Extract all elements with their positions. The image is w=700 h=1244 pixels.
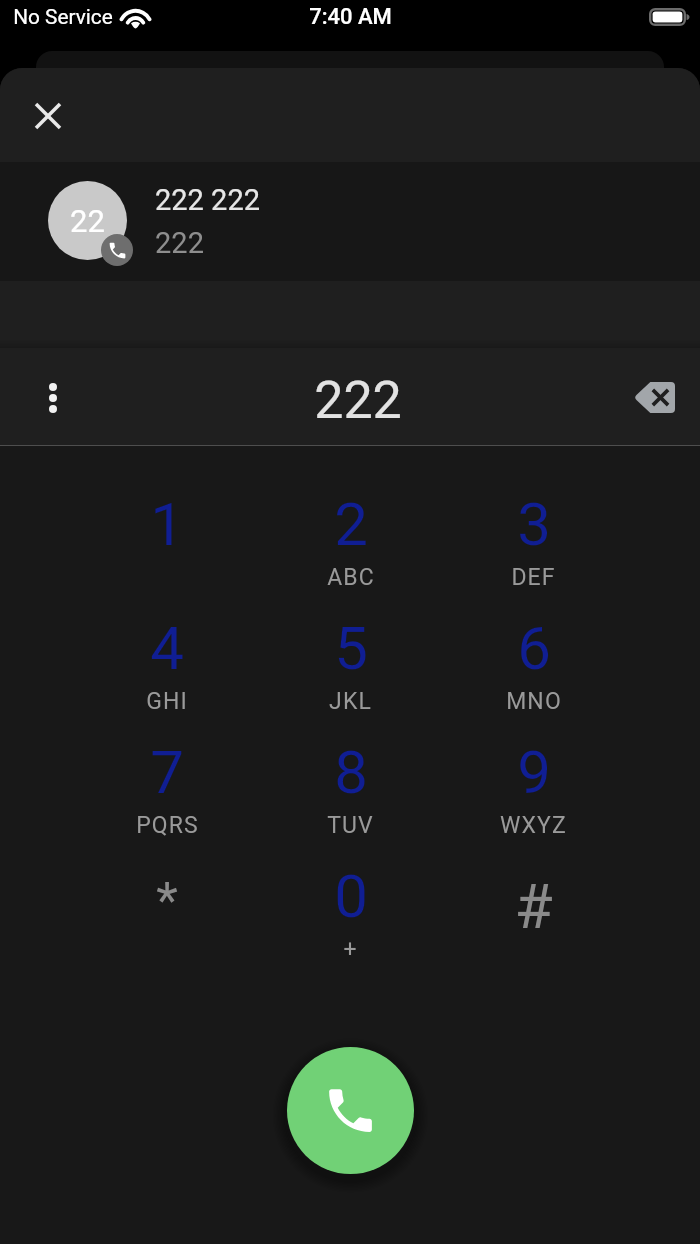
staticText: *	[156, 872, 178, 931]
button[interactable]: 1	[75, 489, 259, 613]
staticText: 4	[150, 613, 184, 683]
button[interactable]: 5	[259, 613, 442, 737]
staticText: 2	[334, 489, 368, 559]
staticText: 8	[334, 737, 368, 807]
button[interactable]: 6	[442, 613, 625, 737]
staticText: MNO	[506, 688, 562, 715]
staticText: DEF	[511, 564, 556, 591]
staticText: TUV	[327, 812, 374, 839]
button[interactable]: #	[442, 861, 625, 985]
staticText: 3	[517, 489, 551, 559]
button[interactable]: More options	[29, 373, 77, 421]
button[interactable]: Call	[287, 1047, 414, 1174]
staticText: WXYZ	[500, 812, 567, 839]
staticText: 0	[334, 861, 368, 931]
staticText: +	[343, 936, 358, 963]
staticText: 22	[70, 203, 105, 239]
staticText: JKL	[329, 688, 372, 715]
button[interactable]: *	[75, 861, 259, 985]
staticText: 9	[517, 737, 551, 807]
staticText: PQRS	[136, 812, 199, 839]
button[interactable]: 2	[259, 489, 442, 613]
staticText: #	[514, 870, 553, 943]
button[interactable]: 3	[442, 489, 625, 613]
button[interactable]: 4	[75, 613, 259, 737]
staticText: 7:40 AM	[309, 4, 392, 30]
button[interactable]: Backspace	[626, 369, 682, 425]
staticText: 1	[150, 489, 184, 559]
button[interactable]: 0	[259, 861, 442, 985]
staticText: 222	[314, 370, 402, 431]
staticText: GHI	[146, 688, 188, 715]
staticText: 5	[334, 613, 368, 683]
staticText: 222 222	[155, 183, 260, 217]
staticText: No Service	[13, 5, 113, 29]
staticText: 7	[150, 737, 184, 807]
button[interactable]: 8	[259, 737, 442, 861]
button[interactable]: Close	[24, 91, 72, 139]
staticText: 222	[155, 226, 204, 260]
staticText: 6	[517, 613, 551, 683]
button[interactable]: 9	[442, 737, 625, 861]
button[interactable]: 7	[75, 737, 259, 861]
button[interactable]: 22	[0, 162, 700, 281]
staticText: ABC	[327, 564, 375, 591]
